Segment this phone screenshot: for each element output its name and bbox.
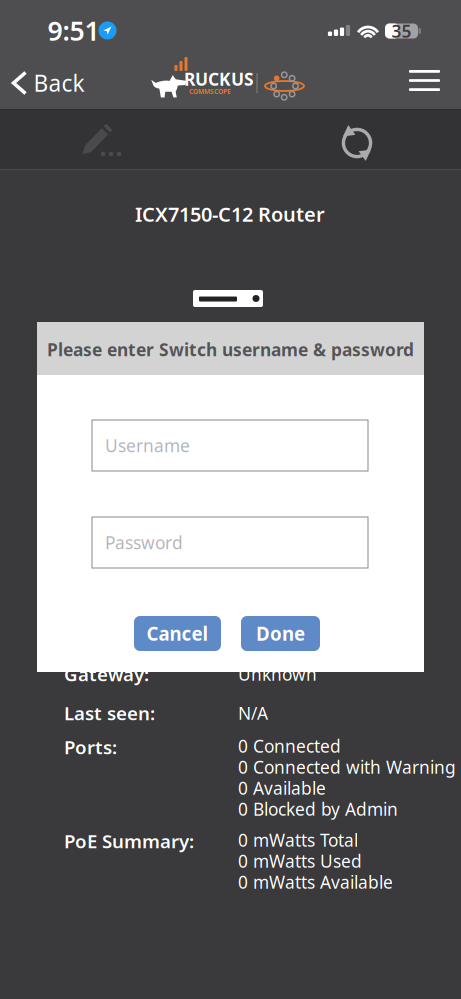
- staticText: ICX7150-C12 Router: [135, 201, 325, 227]
- button[interactable]: Password: [92, 517, 368, 568]
- button[interactable]: Edit: [81, 118, 125, 166]
- staticText: Ports:: [64, 735, 117, 759]
- staticText: 9:51: [47, 13, 99, 48]
- staticText: Last seen:: [64, 701, 155, 725]
- staticText: 0 Connected with Warning: [238, 755, 456, 778]
- staticText: Done: [256, 621, 305, 646]
- staticText: Back: [33, 68, 84, 98]
- staticText: N/A: [238, 701, 268, 724]
- button[interactable]: Cancel: [134, 616, 221, 651]
- staticText: 0 Available: [238, 776, 326, 799]
- button[interactable]: Username: [92, 420, 368, 471]
- staticText: 0 mWatts Used: [238, 849, 362, 872]
- staticText: Unknown: [238, 662, 317, 685]
- staticText: 35: [391, 19, 411, 42]
- staticText: COMMSCOPE: [189, 87, 231, 96]
- button[interactable]: Refresh: [340, 126, 374, 160]
- staticText: Cancel: [146, 621, 208, 646]
- staticText: 0 Connected: [238, 734, 341, 757]
- staticText: 0 mWatts Total: [238, 828, 358, 851]
- staticText: 0 mWatts Available: [238, 870, 393, 893]
- staticText: PoE Summary:: [64, 829, 194, 853]
- staticText: 0 Blocked by Admin: [238, 797, 398, 820]
- staticText: Please enter Switch username & password: [47, 338, 414, 361]
- staticText: Username: [105, 434, 190, 457]
- staticText: Password: [105, 531, 183, 554]
- staticText: Gateway:: [64, 662, 149, 686]
- button[interactable]: Back: [11, 65, 87, 101]
- button[interactable]: Menu: [402, 62, 446, 98]
- button[interactable]: Done: [241, 616, 320, 651]
- staticText: RUCKUS: [184, 67, 254, 90]
